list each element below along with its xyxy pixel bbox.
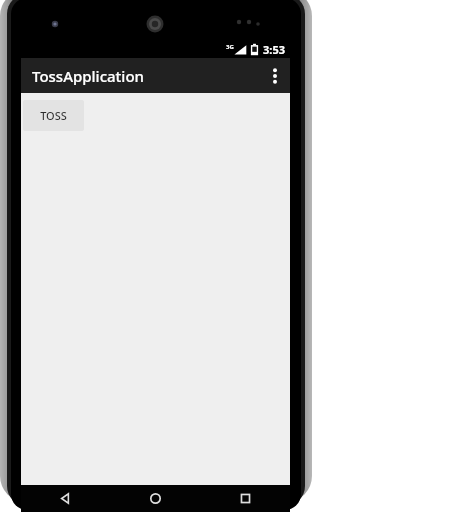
- button[interactable]: TOSS: [23, 100, 84, 131]
- staticText: 3G: [226, 43, 234, 51]
- button[interactable]: Recent apps: [200, 485, 290, 512]
- button[interactable]: Back: [21, 485, 110, 512]
- staticText: TossApplication: [32, 66, 144, 86]
- button[interactable]: Home: [110, 485, 200, 512]
- button[interactable]: More options: [260, 58, 290, 93]
- staticText: 3:53: [263, 42, 285, 57]
- staticText: TOSS: [40, 108, 67, 123]
